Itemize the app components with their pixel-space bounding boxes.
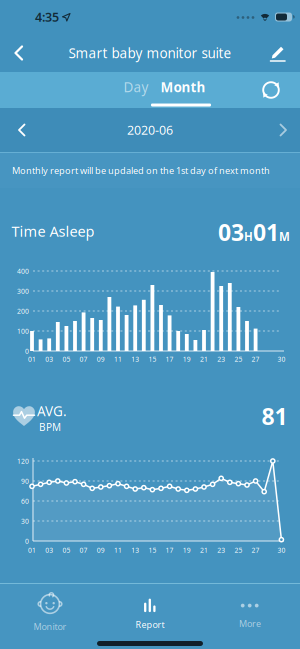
staticText: 0 <box>25 536 29 546</box>
staticText: 25 <box>234 354 242 364</box>
staticText: 07 <box>80 354 88 364</box>
staticText: 09 <box>97 354 105 364</box>
staticText: 30 <box>277 354 285 364</box>
staticText: 05 <box>62 545 70 555</box>
staticText: 27 <box>252 354 260 364</box>
staticText: 05 <box>62 354 70 364</box>
button[interactable]: Day <box>113 70 158 104</box>
button[interactable]: Monitor <box>0 588 100 636</box>
staticText: 07 <box>80 545 88 555</box>
staticText: 19 <box>183 354 191 364</box>
staticText: 03 <box>45 545 53 555</box>
staticText: 11 <box>114 354 122 364</box>
staticText: Smart baby monitor suite <box>68 44 231 62</box>
staticText: AVG. <box>37 402 67 420</box>
staticText: 30 <box>21 516 29 526</box>
staticText: 13 <box>131 354 139 364</box>
staticText: 13 <box>131 545 139 555</box>
button[interactable]: Edit <box>264 37 291 68</box>
staticText: 100 <box>17 326 29 336</box>
staticText: 03H01M <box>218 217 290 247</box>
button[interactable]: Refresh <box>256 75 285 104</box>
button[interactable]: Month <box>150 70 215 104</box>
button[interactable]: Next month <box>270 115 296 145</box>
staticText: 400 <box>17 266 29 276</box>
staticText: More <box>239 617 261 630</box>
button[interactable]: Back <box>4 38 33 67</box>
staticText: Monthly report will be updaled on the 1s… <box>12 164 270 177</box>
staticText: 19 <box>183 545 191 555</box>
staticText: Monitor <box>33 620 66 633</box>
staticText: 2020-06 <box>127 121 173 138</box>
staticText: BPM <box>39 420 61 434</box>
staticText: 30 <box>277 545 285 555</box>
button[interactable]: Previous month <box>9 115 35 145</box>
staticText: 60 <box>21 496 29 506</box>
staticText: Time Asleep <box>11 221 94 241</box>
staticText: 03 <box>45 354 53 364</box>
staticText: Report <box>135 618 164 631</box>
staticText: 23 <box>217 354 225 364</box>
button[interactable]: Report <box>100 588 200 636</box>
button[interactable]: More <box>200 588 300 636</box>
staticText: Day <box>123 78 148 96</box>
staticText: 21 <box>200 545 208 555</box>
staticText: 11 <box>114 545 122 555</box>
staticText: 4:35 <box>35 8 59 25</box>
staticText: 81 <box>261 400 287 432</box>
staticText: 23 <box>217 545 225 555</box>
staticText: 90 <box>21 476 29 486</box>
staticText: 21 <box>200 354 208 364</box>
staticText: 01 <box>28 354 36 364</box>
staticText: 27 <box>252 545 260 555</box>
staticText: 120 <box>17 456 29 466</box>
staticText: 300 <box>17 286 29 296</box>
staticText: 15 <box>148 354 156 364</box>
staticText: 09 <box>97 545 105 555</box>
staticText: 25 <box>234 545 242 555</box>
staticText: 200 <box>17 306 29 316</box>
staticText: 17 <box>166 354 174 364</box>
staticText: 15 <box>148 545 156 555</box>
staticText: 17 <box>166 545 174 555</box>
staticText: 01 <box>28 545 36 555</box>
staticText: 0 <box>25 346 29 356</box>
staticText: Month <box>160 78 205 96</box>
